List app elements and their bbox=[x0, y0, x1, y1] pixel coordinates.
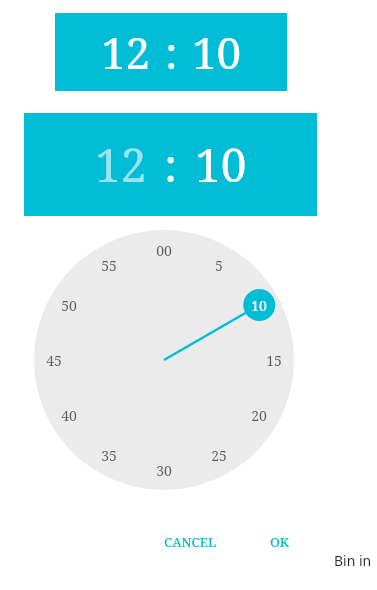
staticText: 30 bbox=[156, 461, 172, 480]
staticText: 5 bbox=[215, 256, 223, 275]
staticText: OK bbox=[270, 533, 290, 551]
staticText: 45 bbox=[46, 351, 62, 370]
staticText: 15 bbox=[266, 351, 282, 370]
staticText: 50 bbox=[61, 296, 77, 315]
button[interactable]: 00 bbox=[34, 230, 294, 490]
staticText: 20 bbox=[251, 406, 267, 425]
staticText: 00 bbox=[156, 241, 172, 260]
staticText: 12 bbox=[95, 133, 147, 196]
staticText: 40 bbox=[61, 406, 77, 425]
staticText: 35 bbox=[101, 446, 117, 465]
staticText: 55 bbox=[101, 256, 117, 275]
button[interactable]: 12 bbox=[95, 133, 147, 196]
staticText: Bin in bbox=[334, 551, 372, 570]
button[interactable]: Bin in bbox=[325, 537, 377, 583]
button[interactable]: 12 bbox=[55, 13, 287, 91]
staticText: : bbox=[165, 22, 178, 82]
staticText: 25 bbox=[211, 446, 227, 465]
staticText: CANCEL bbox=[164, 533, 217, 551]
staticText: 10 bbox=[251, 296, 267, 315]
button[interactable]: CANCEL bbox=[156, 527, 225, 557]
staticText: : bbox=[164, 133, 178, 196]
staticText: 10 bbox=[195, 133, 247, 196]
staticText: 10 bbox=[192, 22, 242, 82]
button[interactable]: OK bbox=[262, 527, 298, 557]
staticText: 12 bbox=[101, 22, 151, 82]
button[interactable]: 10 bbox=[195, 133, 247, 196]
